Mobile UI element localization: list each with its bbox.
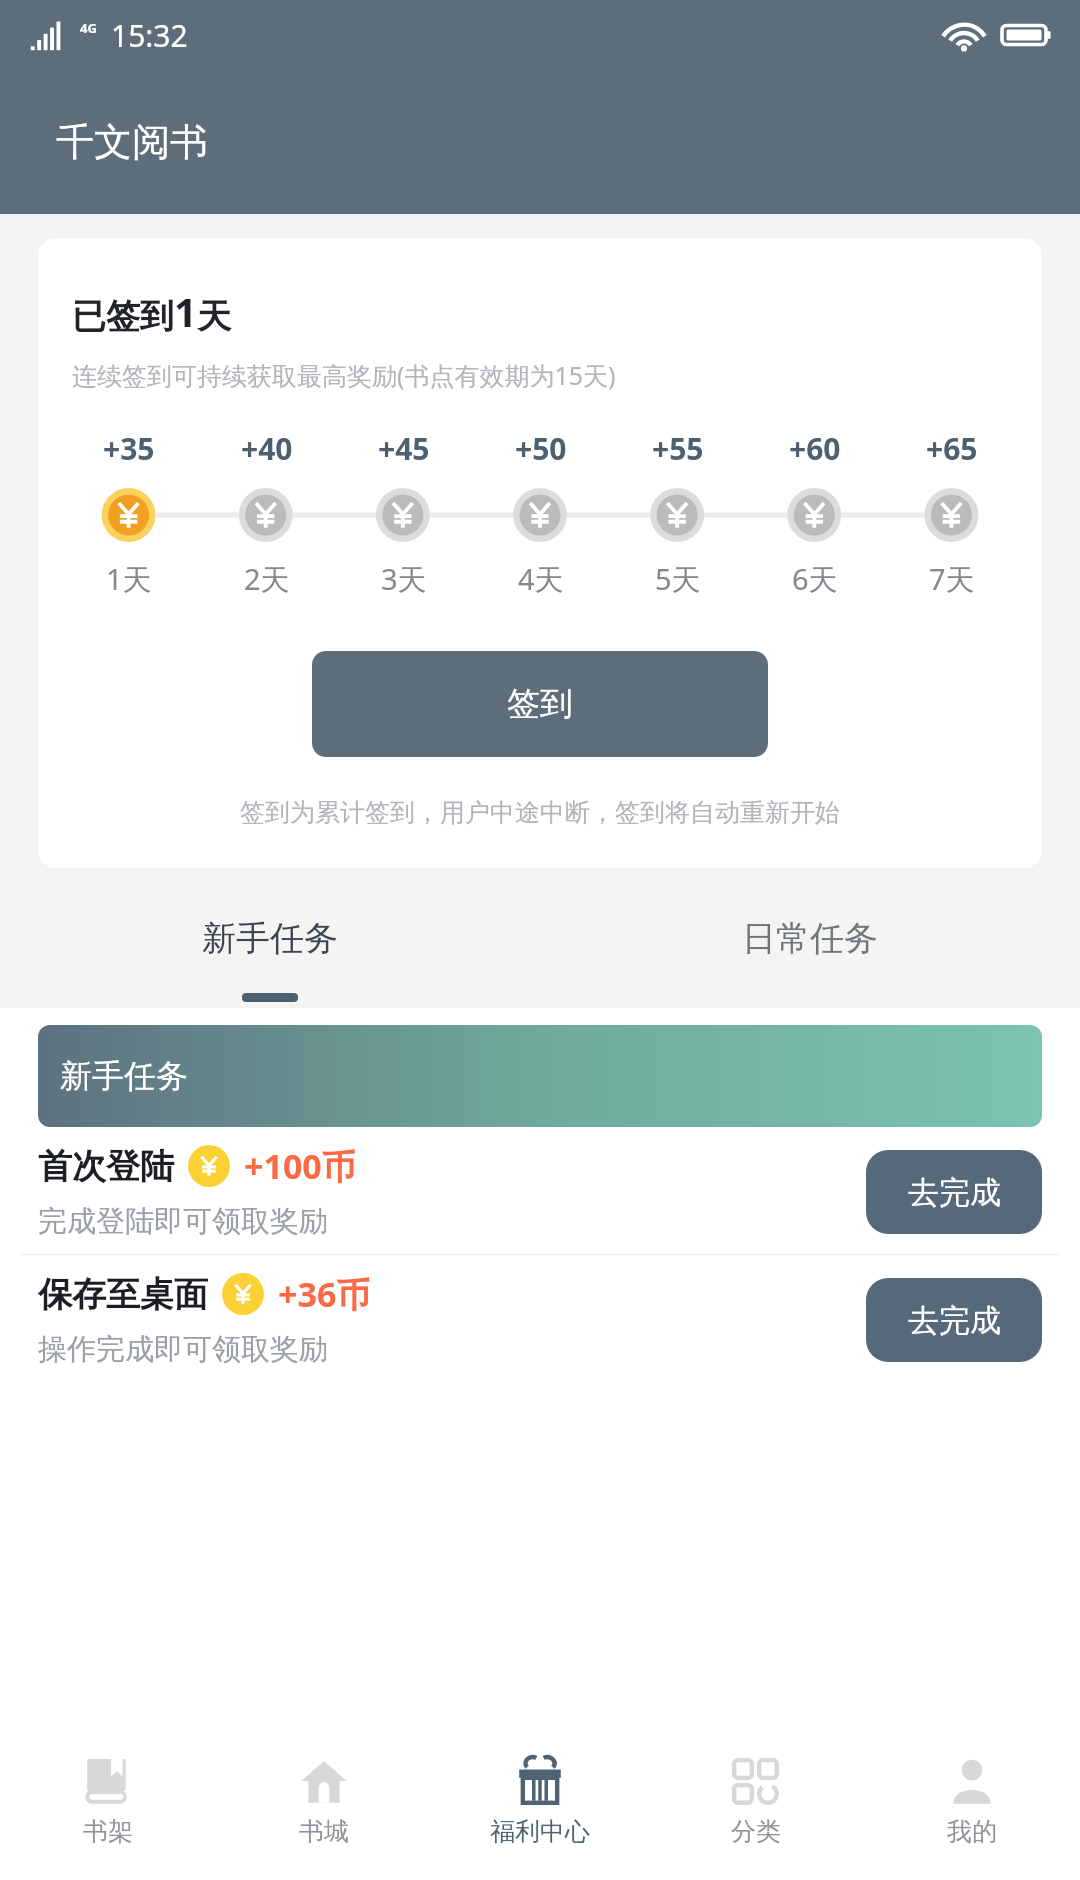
button[interactable]: 书城 <box>216 1722 432 1880</box>
staticText: 我的 <box>947 1816 997 1847</box>
staticText: 4天 <box>518 559 564 599</box>
staticText: +40 <box>241 428 293 469</box>
staticText: 新手任务 <box>202 917 338 960</box>
staticText: 1 <box>174 284 197 338</box>
button[interactable]: 新手任务 <box>0 868 540 1008</box>
staticText: 分类 <box>731 1816 781 1847</box>
staticText: 1天 <box>106 559 152 599</box>
staticText: +50 <box>515 428 567 469</box>
staticText: 15:32 <box>111 15 188 56</box>
staticText: +35 <box>103 428 155 469</box>
staticText: +36币 <box>278 1271 371 1317</box>
staticText: 3天 <box>381 559 427 599</box>
staticText: +65 <box>926 428 978 469</box>
button[interactable]: 书架 <box>0 1722 216 1880</box>
button[interactable]: 签到 <box>312 651 768 757</box>
staticText: 去完成 <box>908 1173 1001 1212</box>
staticText: 4G <box>80 19 97 37</box>
staticText: +60 <box>789 428 841 469</box>
button[interactable]: 去完成 <box>866 1150 1042 1234</box>
staticText: 天 <box>197 295 231 338</box>
staticText: 连续签到可持续获取最高奖励(书点有效期为15天) <box>72 358 616 392</box>
staticText: 书架 <box>83 1816 133 1847</box>
staticText: +55 <box>652 428 704 469</box>
staticText: 7天 <box>929 559 975 599</box>
button[interactable]: 去完成 <box>866 1278 1042 1362</box>
staticText: +45 <box>378 428 430 469</box>
staticText: 6天 <box>792 559 838 599</box>
staticText: 2天 <box>244 559 290 599</box>
staticText: 签到为累计签到，用户中途中断，签到将自动重新开始 <box>240 797 840 828</box>
staticText: 操作完成即可领取奖励 <box>38 1331 328 1368</box>
button[interactable]: 我的 <box>864 1722 1080 1880</box>
staticText: +100币 <box>244 1143 356 1189</box>
staticText: 千文阅书 <box>56 118 208 166</box>
button[interactable]: 分类 <box>648 1722 864 1880</box>
button[interactable]: 福利中心 <box>432 1722 648 1880</box>
staticText: 去完成 <box>908 1301 1001 1340</box>
staticText: 新手任务 <box>60 1056 188 1096</box>
staticText: 保存至桌面 <box>38 1273 208 1316</box>
staticText: 签到 <box>507 683 573 725</box>
staticText: 完成登陆即可领取奖励 <box>38 1203 328 1240</box>
staticText: 已签到 <box>72 295 174 338</box>
staticText: 福利中心 <box>490 1816 590 1847</box>
staticText: 日常任务 <box>742 917 878 960</box>
staticText: 书城 <box>299 1816 349 1847</box>
staticText: 首次登陆 <box>38 1145 174 1188</box>
staticText: 5天 <box>655 559 701 599</box>
button[interactable]: 新手任务 <box>38 1025 1042 1127</box>
button[interactable]: 日常任务 <box>540 868 1080 1008</box>
